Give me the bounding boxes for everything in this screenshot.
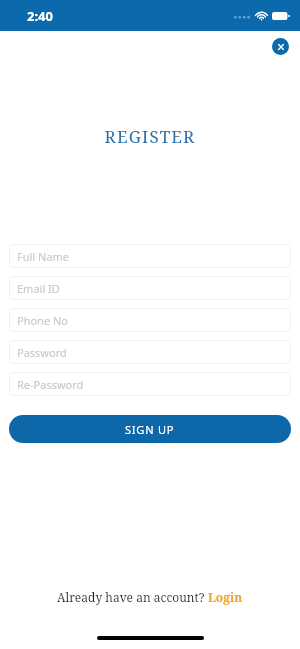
staticText: Re-Password — [17, 377, 84, 392]
button[interactable]: Close — [272, 38, 289, 55]
button[interactable]: Password — [9, 340, 291, 364]
staticText: 2:40 — [27, 7, 53, 25]
staticText: Phone No — [17, 313, 68, 328]
button[interactable]: Phone No — [9, 308, 291, 332]
staticText: Email ID — [17, 281, 60, 296]
staticText: Full Name — [17, 249, 70, 264]
button[interactable]: Login — [208, 589, 243, 605]
button[interactable]: Full Name — [9, 244, 291, 268]
staticText: Login — [208, 589, 243, 605]
button[interactable]: Re-Password — [9, 372, 291, 396]
staticText: Password — [17, 345, 67, 360]
button[interactable]: Email ID — [9, 276, 291, 300]
staticText: SIGN UP — [125, 422, 175, 437]
button[interactable]: SIGN UP — [9, 415, 291, 443]
staticText: REGISTER — [0, 125, 300, 148]
staticText: Already have an account? — [57, 589, 208, 605]
